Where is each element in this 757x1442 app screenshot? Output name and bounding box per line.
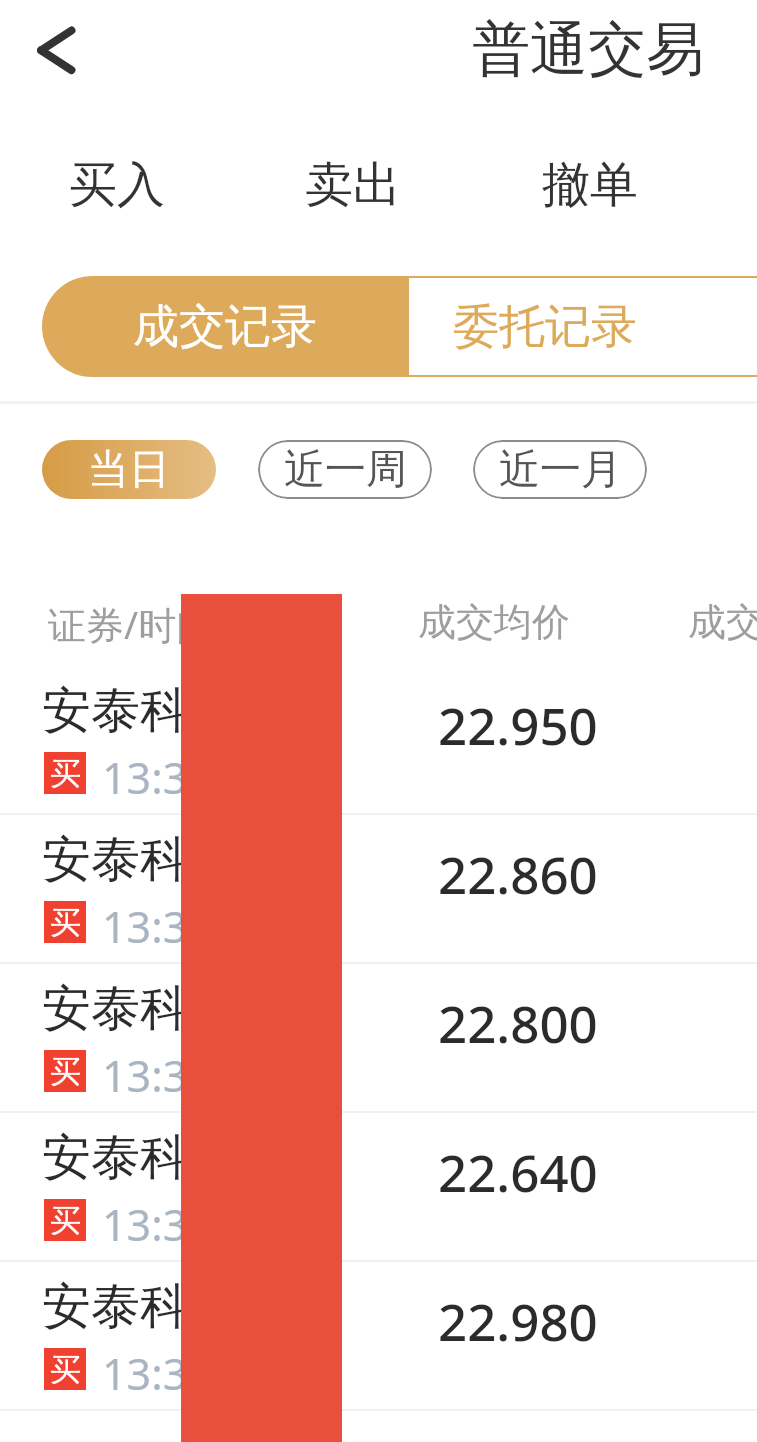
button[interactable]: 撤单 (500, 138, 680, 232)
staticText: 买 (50, 754, 81, 793)
staticText: 安泰科技 (42, 1127, 238, 1189)
staticText: 13:38 (102, 1344, 212, 1403)
button[interactable]: 安泰科技 (0, 815, 757, 962)
staticText: 22.860 (438, 839, 598, 908)
staticText: 安泰科技 (42, 1276, 238, 1338)
button[interactable]: 安泰科技 (0, 1262, 757, 1409)
staticText: 买 (50, 1350, 81, 1389)
staticText: 买 (50, 1201, 81, 1240)
staticText: 22.950 (438, 690, 598, 759)
staticText: 卖出 (305, 155, 401, 215)
staticText: 22.800 (438, 988, 598, 1057)
staticText: 买入 (69, 155, 165, 215)
staticText: 买 (50, 903, 81, 942)
staticText: 22.640 (438, 1137, 598, 1206)
button[interactable]: 买入 (27, 138, 207, 232)
staticText: 当日 (88, 444, 170, 496)
staticText: 安泰科技 (42, 829, 238, 891)
button[interactable]: 委托记录 (407, 276, 757, 377)
button[interactable]: 近一周 (258, 440, 432, 499)
staticText: 近一周 (284, 444, 407, 496)
staticText: 安泰科技 (42, 978, 238, 1040)
staticText: 证券/时间 (48, 598, 215, 650)
staticText: 买 (50, 1052, 81, 1091)
button[interactable]: 安泰科技 (0, 1113, 757, 1260)
button[interactable]: 成交记录 (42, 276, 407, 377)
staticText: 撤单 (542, 155, 638, 215)
staticText: 普通交易 (472, 13, 704, 86)
staticText: 13:39 (102, 897, 212, 956)
staticText: 安泰科技 (42, 680, 238, 742)
staticText: 近一月 (499, 444, 622, 496)
staticText: 13:39 (102, 1195, 212, 1254)
staticText: 成交记录 (133, 298, 317, 356)
button[interactable]: Back (20, 16, 86, 82)
button[interactable]: 当日 (42, 440, 216, 499)
staticText: 委托记录 (453, 298, 637, 356)
button[interactable]: 安泰科技 (0, 666, 757, 813)
staticText: 成交数量 (688, 598, 757, 646)
button[interactable]: 安泰科技 (0, 964, 757, 1111)
staticText: 13:39 (102, 748, 212, 807)
staticText: 成交均价 (418, 598, 570, 646)
button[interactable]: 近一月 (473, 440, 647, 499)
staticText: 22.980 (438, 1286, 598, 1355)
staticText: 13:39 (102, 1046, 212, 1105)
button[interactable]: 卖出 (263, 138, 443, 232)
